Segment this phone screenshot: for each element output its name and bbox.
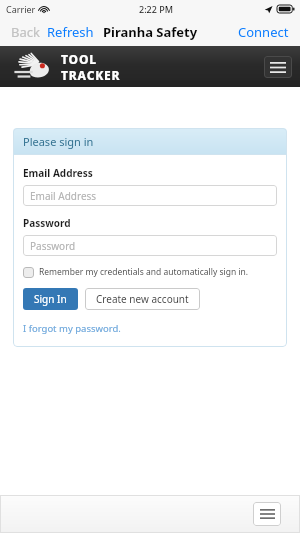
button[interactable]: Connect xyxy=(235,19,292,45)
staticText: Create new account xyxy=(96,292,189,306)
button[interactable]: Back xyxy=(8,19,43,45)
staticText: Piranha Safety xyxy=(103,23,198,41)
staticText: Sign In xyxy=(34,292,67,306)
button[interactable]: Create new account xyxy=(85,288,200,310)
button[interactable]: Menu xyxy=(253,502,281,526)
staticText: TOOL xyxy=(61,51,97,67)
button[interactable]: Sign In xyxy=(23,288,78,310)
staticText: Email Address xyxy=(30,189,97,203)
button[interactable]: I forgot my password. xyxy=(23,322,121,335)
staticText: Refresh xyxy=(47,23,94,41)
button[interactable]: Remember my credentials and automaticall… xyxy=(23,266,249,278)
staticText: I forgot my password. xyxy=(23,322,121,335)
staticText: Password xyxy=(30,239,76,253)
staticText: Password xyxy=(23,216,71,230)
staticText: Carrier xyxy=(6,3,36,15)
staticText: Please sign in xyxy=(23,134,94,149)
staticText: Email Address xyxy=(23,166,93,180)
button[interactable]: Password xyxy=(23,235,277,256)
button[interactable]: Menu xyxy=(264,56,292,78)
staticText: Connect xyxy=(238,23,289,41)
button[interactable]: Email Address xyxy=(23,185,277,206)
staticText: Back xyxy=(11,23,40,41)
staticText: Remember my credentials and automaticall… xyxy=(39,266,249,278)
staticText: 2:22 PM xyxy=(139,3,173,15)
staticText: TRACKER xyxy=(61,67,121,83)
button[interactable]: Refresh xyxy=(44,19,97,45)
